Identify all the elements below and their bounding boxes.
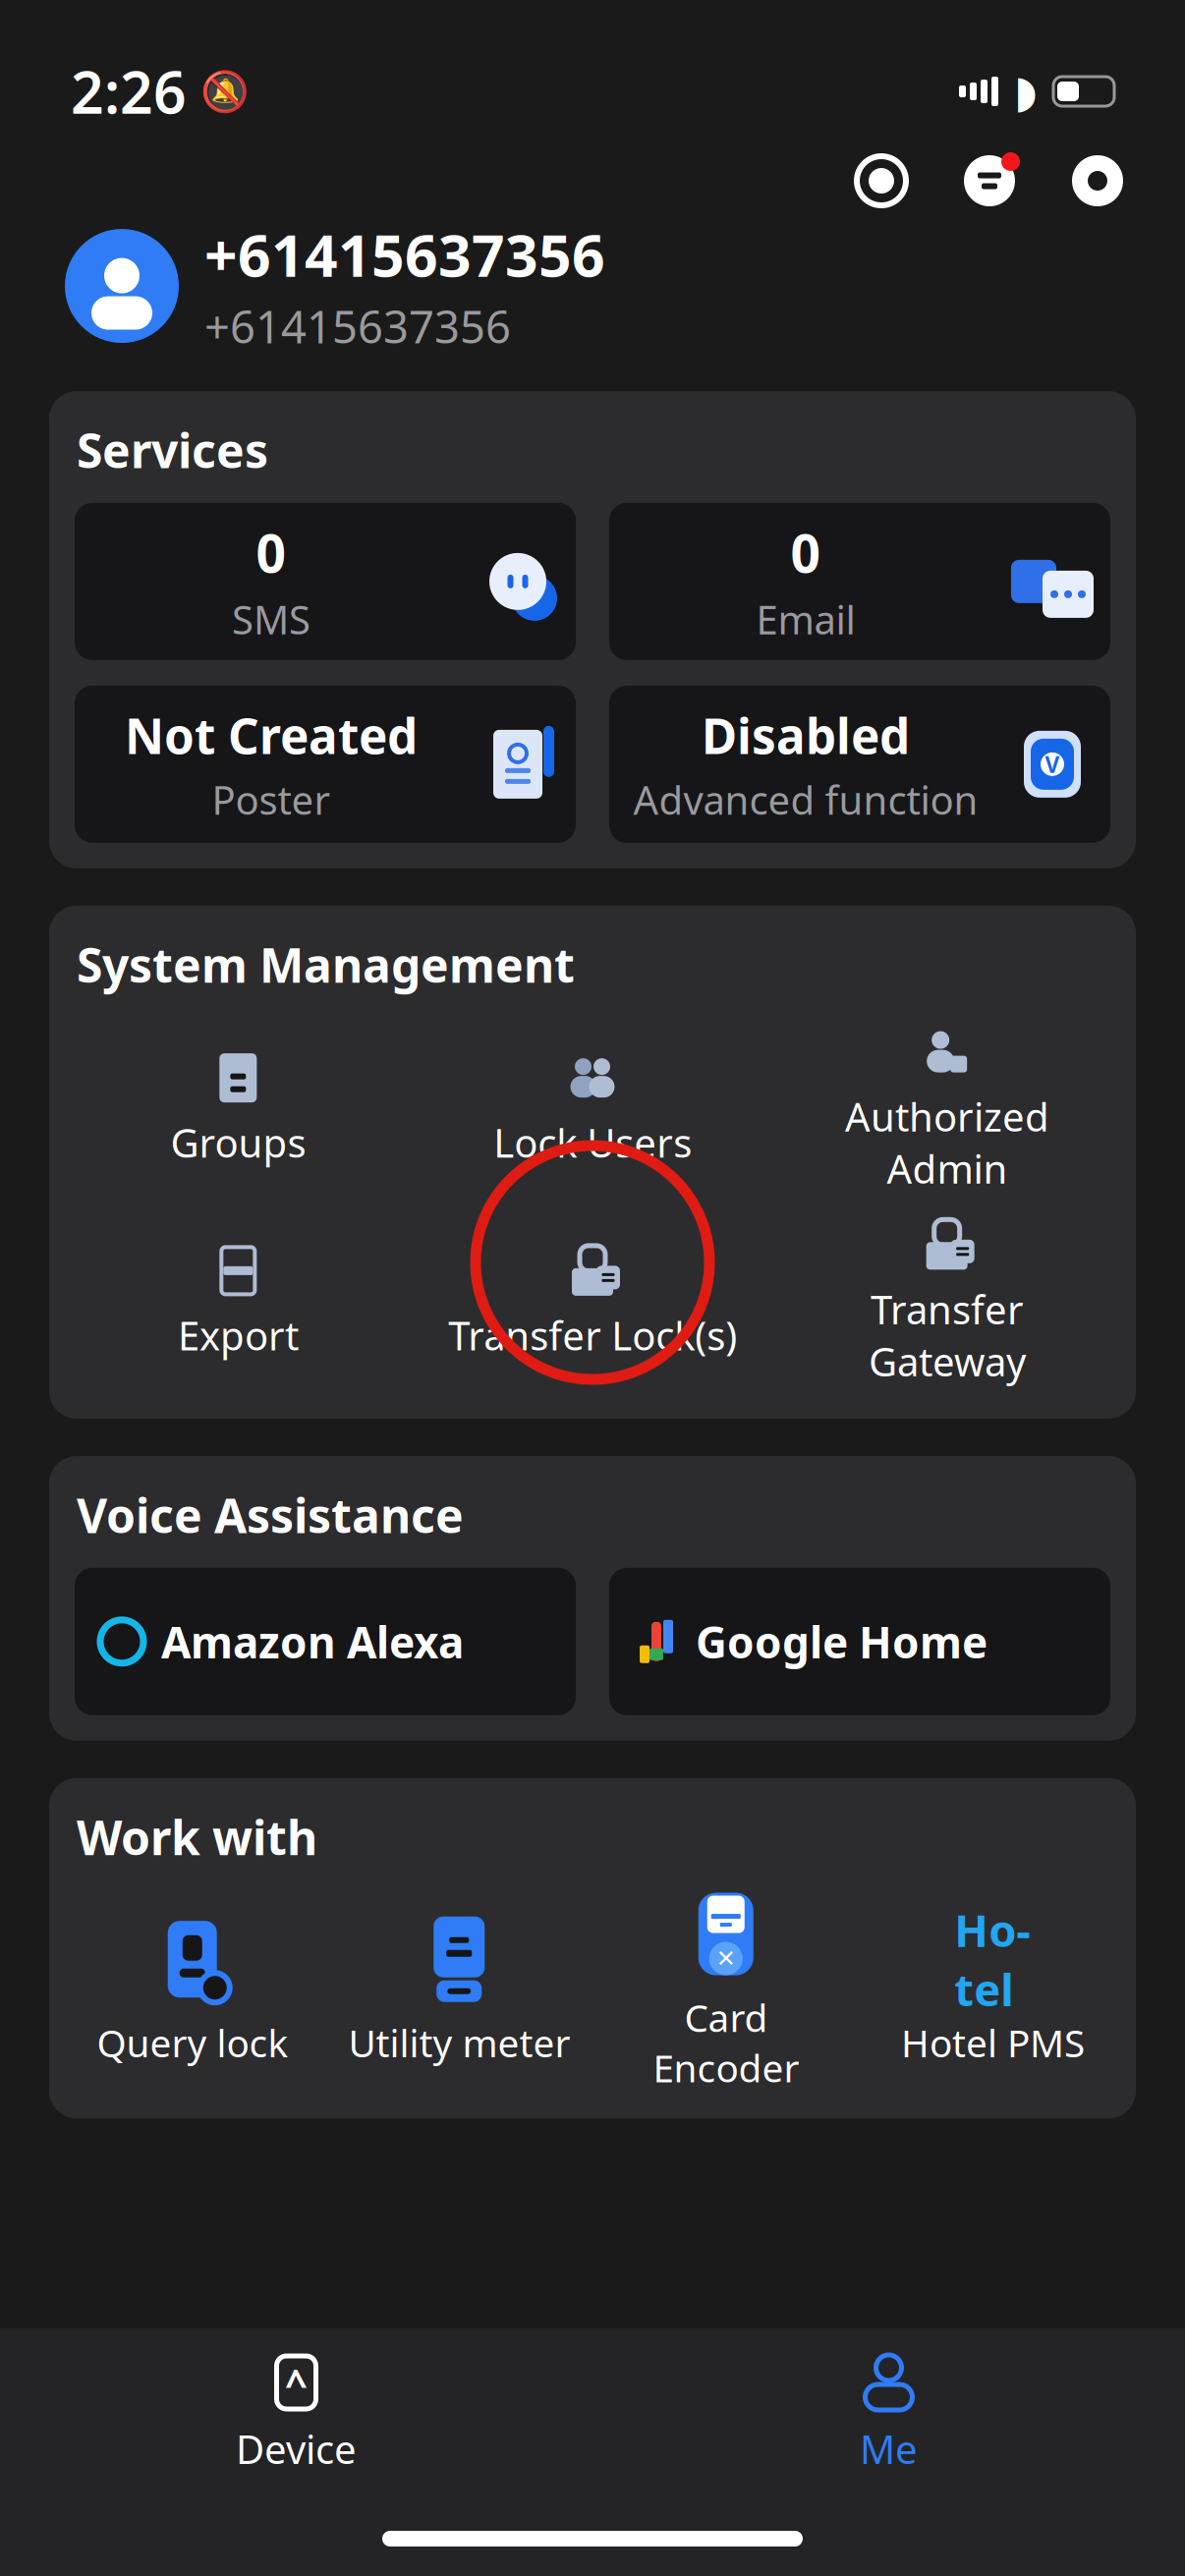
staticText: Disabled bbox=[702, 703, 910, 767]
button[interactable]: Query lock bbox=[59, 1915, 326, 2068]
staticText: Hotel PMS bbox=[901, 2017, 1085, 2068]
staticText: Not Created bbox=[125, 703, 418, 767]
button[interactable]: Support bbox=[851, 150, 912, 211]
staticText: Me bbox=[860, 2423, 918, 2475]
button[interactable]: Export bbox=[61, 1236, 415, 1367]
staticText: Transfer Lock(s) bbox=[448, 1309, 737, 1361]
staticText: Export bbox=[178, 1309, 299, 1361]
button[interactable]: Messages bbox=[959, 150, 1020, 211]
staticText: 0 bbox=[790, 518, 821, 587]
staticText: Email bbox=[756, 593, 855, 645]
button[interactable]: ✕ bbox=[592, 1890, 859, 2093]
button[interactable]: Settings bbox=[1067, 150, 1128, 211]
staticText: Advanced function bbox=[633, 773, 978, 825]
staticText: +61415637356 bbox=[204, 297, 511, 356]
staticText: ^ bbox=[285, 2356, 308, 2408]
staticText: ✕ bbox=[716, 1945, 736, 1972]
button[interactable]: ^ bbox=[0, 2344, 592, 2485]
button[interactable]: Transfer Lock(s) bbox=[415, 1236, 770, 1367]
button[interactable]: Disabled bbox=[609, 686, 1110, 843]
staticText: 2:26 bbox=[71, 53, 187, 130]
staticText: Poster bbox=[212, 773, 331, 825]
staticText: Groups bbox=[170, 1116, 306, 1168]
staticText: 🔕 bbox=[200, 69, 250, 114]
staticText: Work with bbox=[77, 1806, 317, 1868]
staticText: Utility meter bbox=[348, 2017, 570, 2068]
staticText: 0 bbox=[256, 518, 286, 587]
staticText: Authorized Admin bbox=[845, 1090, 1049, 1194]
staticText: Transfer Gateway bbox=[868, 1283, 1026, 1387]
staticText: Device bbox=[236, 2423, 357, 2475]
button[interactable]: Groups bbox=[61, 1044, 415, 1174]
staticText: Voice Assistance bbox=[77, 1484, 464, 1546]
button[interactable]: Amazon Alexa bbox=[75, 1568, 576, 1715]
staticText: Query lock bbox=[96, 2017, 288, 2068]
button[interactable]: Me bbox=[592, 2344, 1185, 2485]
staticText: System Management bbox=[77, 933, 575, 996]
button[interactable]: Utility meter bbox=[326, 1915, 592, 2068]
staticText: ◗ bbox=[1014, 66, 1038, 117]
staticText: Hotel bbox=[954, 1900, 1031, 2018]
staticText: Amazon Alexa bbox=[161, 1613, 464, 1670]
button[interactable]: 0 bbox=[609, 503, 1110, 660]
staticText: V bbox=[1045, 749, 1060, 779]
staticText: +61415637356 bbox=[204, 216, 605, 293]
button[interactable]: Not Created bbox=[75, 686, 576, 843]
staticText: Card Encoder bbox=[653, 1992, 799, 2093]
button[interactable]: +61415637356 bbox=[0, 216, 1185, 391]
button[interactable]: Transfer Gateway bbox=[770, 1210, 1124, 1393]
button[interactable]: Lock Users bbox=[415, 1044, 770, 1174]
button[interactable]: Hotel bbox=[859, 1915, 1126, 2068]
staticText: Lock Users bbox=[493, 1116, 692, 1168]
button[interactable]: 0 bbox=[75, 503, 576, 660]
staticText: Services bbox=[77, 419, 268, 481]
button[interactable]: Google Home bbox=[609, 1568, 1110, 1715]
staticText: Google Home bbox=[696, 1613, 987, 1670]
staticText: SMS bbox=[232, 593, 310, 645]
button[interactable]: Authorized Admin bbox=[770, 1017, 1124, 1200]
